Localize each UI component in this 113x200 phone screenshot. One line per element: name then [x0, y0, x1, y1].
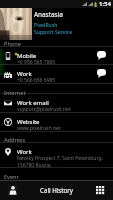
staticText: Work email: [17, 99, 49, 107]
staticText: 1:54: [99, 0, 111, 8]
button[interactable]: Send message: [89, 64, 113, 83]
staticText: Support Service: [34, 28, 73, 35]
button[interactable]: Call History: [26, 181, 87, 200]
staticText: Event: [4, 173, 19, 181]
staticText: Anastasia: [34, 10, 63, 19]
button[interactable]: Work email: [0, 93, 113, 112]
button[interactable]: Work: [0, 142, 113, 167]
staticText: +0 956 565 7865: [17, 59, 91, 66]
button[interactable]: Work: [0, 64, 113, 83]
button[interactable]: Send message: [89, 46, 113, 65]
staticText: support@pixelrush.net: [17, 106, 91, 113]
staticText: Nevsky Prospect 7, Saint Petersburg, 156…: [17, 155, 103, 169]
staticText: Mobile: [17, 52, 37, 60]
staticText: PixelRush: [34, 21, 58, 28]
staticText: www.pixelrush.net: [17, 125, 91, 132]
staticText: Website: [17, 118, 40, 126]
button[interactable]: Keypad: [87, 181, 113, 200]
staticText: Address: [4, 136, 26, 144]
staticText: Work: [17, 148, 32, 156]
button[interactable]: Mobile: [0, 46, 113, 65]
staticText: Internet: [4, 89, 26, 97]
staticText: +0 566 656 6985: [17, 77, 91, 84]
button[interactable]: Contacts: [0, 181, 26, 200]
staticText: Work: [17, 70, 32, 78]
staticText: Phone: [4, 40, 21, 48]
button[interactable]: Website: [0, 112, 113, 131]
staticText: Call History: [40, 186, 74, 194]
